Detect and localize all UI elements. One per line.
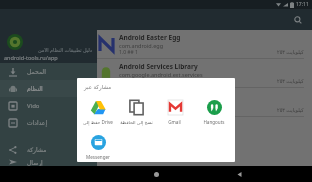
button[interactable]: Android Easter Egg xyxy=(97,30,304,58)
button[interactable]: Gmail xyxy=(155,95,194,127)
button[interactable]: مشاركة xyxy=(0,141,97,158)
staticText: إعدادات xyxy=(27,119,48,126)
button[interactable]: Back xyxy=(230,166,248,182)
button[interactable]: Hangouts xyxy=(194,95,233,127)
button[interactable]: نسخ إلى الحافظة xyxy=(117,95,155,127)
staticText: Android Easter Egg xyxy=(119,33,181,42)
staticText: 17:11 xyxy=(296,1,309,8)
staticText: Messenger xyxy=(86,154,110,160)
button[interactable]: Home xyxy=(147,166,165,182)
button[interactable]: Search xyxy=(291,13,305,27)
button[interactable]: Android Services Library xyxy=(97,59,304,87)
staticText: حفظ إلى Drive xyxy=(83,119,113,125)
staticText: com.google.android.ext.services xyxy=(119,71,203,78)
staticText: Hangouts xyxy=(203,119,225,125)
button[interactable]: النظام xyxy=(0,80,97,97)
staticText: المحمل xyxy=(27,68,46,75)
button[interactable]: إعدادات xyxy=(0,114,97,131)
staticText: Android Services Library xyxy=(119,62,198,71)
staticText: نسخ إلى الحافظة xyxy=(120,119,153,125)
button[interactable]: إرسال xyxy=(0,158,97,166)
staticText: مشاركة xyxy=(27,146,47,153)
staticText: النظام xyxy=(27,85,43,92)
button[interactable]: حفظ إلى Drive xyxy=(79,95,117,127)
button[interactable]: Android Shared Library xyxy=(97,88,304,116)
staticText: دليل تطبيقات النظام الآمن xyxy=(38,47,93,54)
staticText: كيلوبايت ٢٥٣ xyxy=(277,107,304,114)
staticText: Gmail xyxy=(168,119,181,125)
staticText: مشاركة عبر xyxy=(84,83,112,90)
button[interactable]: Vido xyxy=(0,97,97,114)
staticText: 1.0 ## 1 xyxy=(119,107,138,114)
staticText: android-tools.ru/app xyxy=(4,54,58,61)
staticText: Android Shared Library xyxy=(119,91,194,100)
button[interactable]: Messenger xyxy=(79,130,117,162)
staticText: 1.0 ## 1 xyxy=(119,49,138,56)
staticText: كيلوبايت ٢٥٣ xyxy=(277,49,304,56)
staticText: com.google.android.shared xyxy=(119,100,191,107)
staticText: إرسال xyxy=(27,159,43,166)
button[interactable]: المحمل xyxy=(0,63,97,80)
staticText: Vido xyxy=(27,102,40,110)
staticText: كيلوبايت ٢٥٣ xyxy=(277,78,304,85)
staticText: com.android.egg xyxy=(119,42,164,49)
